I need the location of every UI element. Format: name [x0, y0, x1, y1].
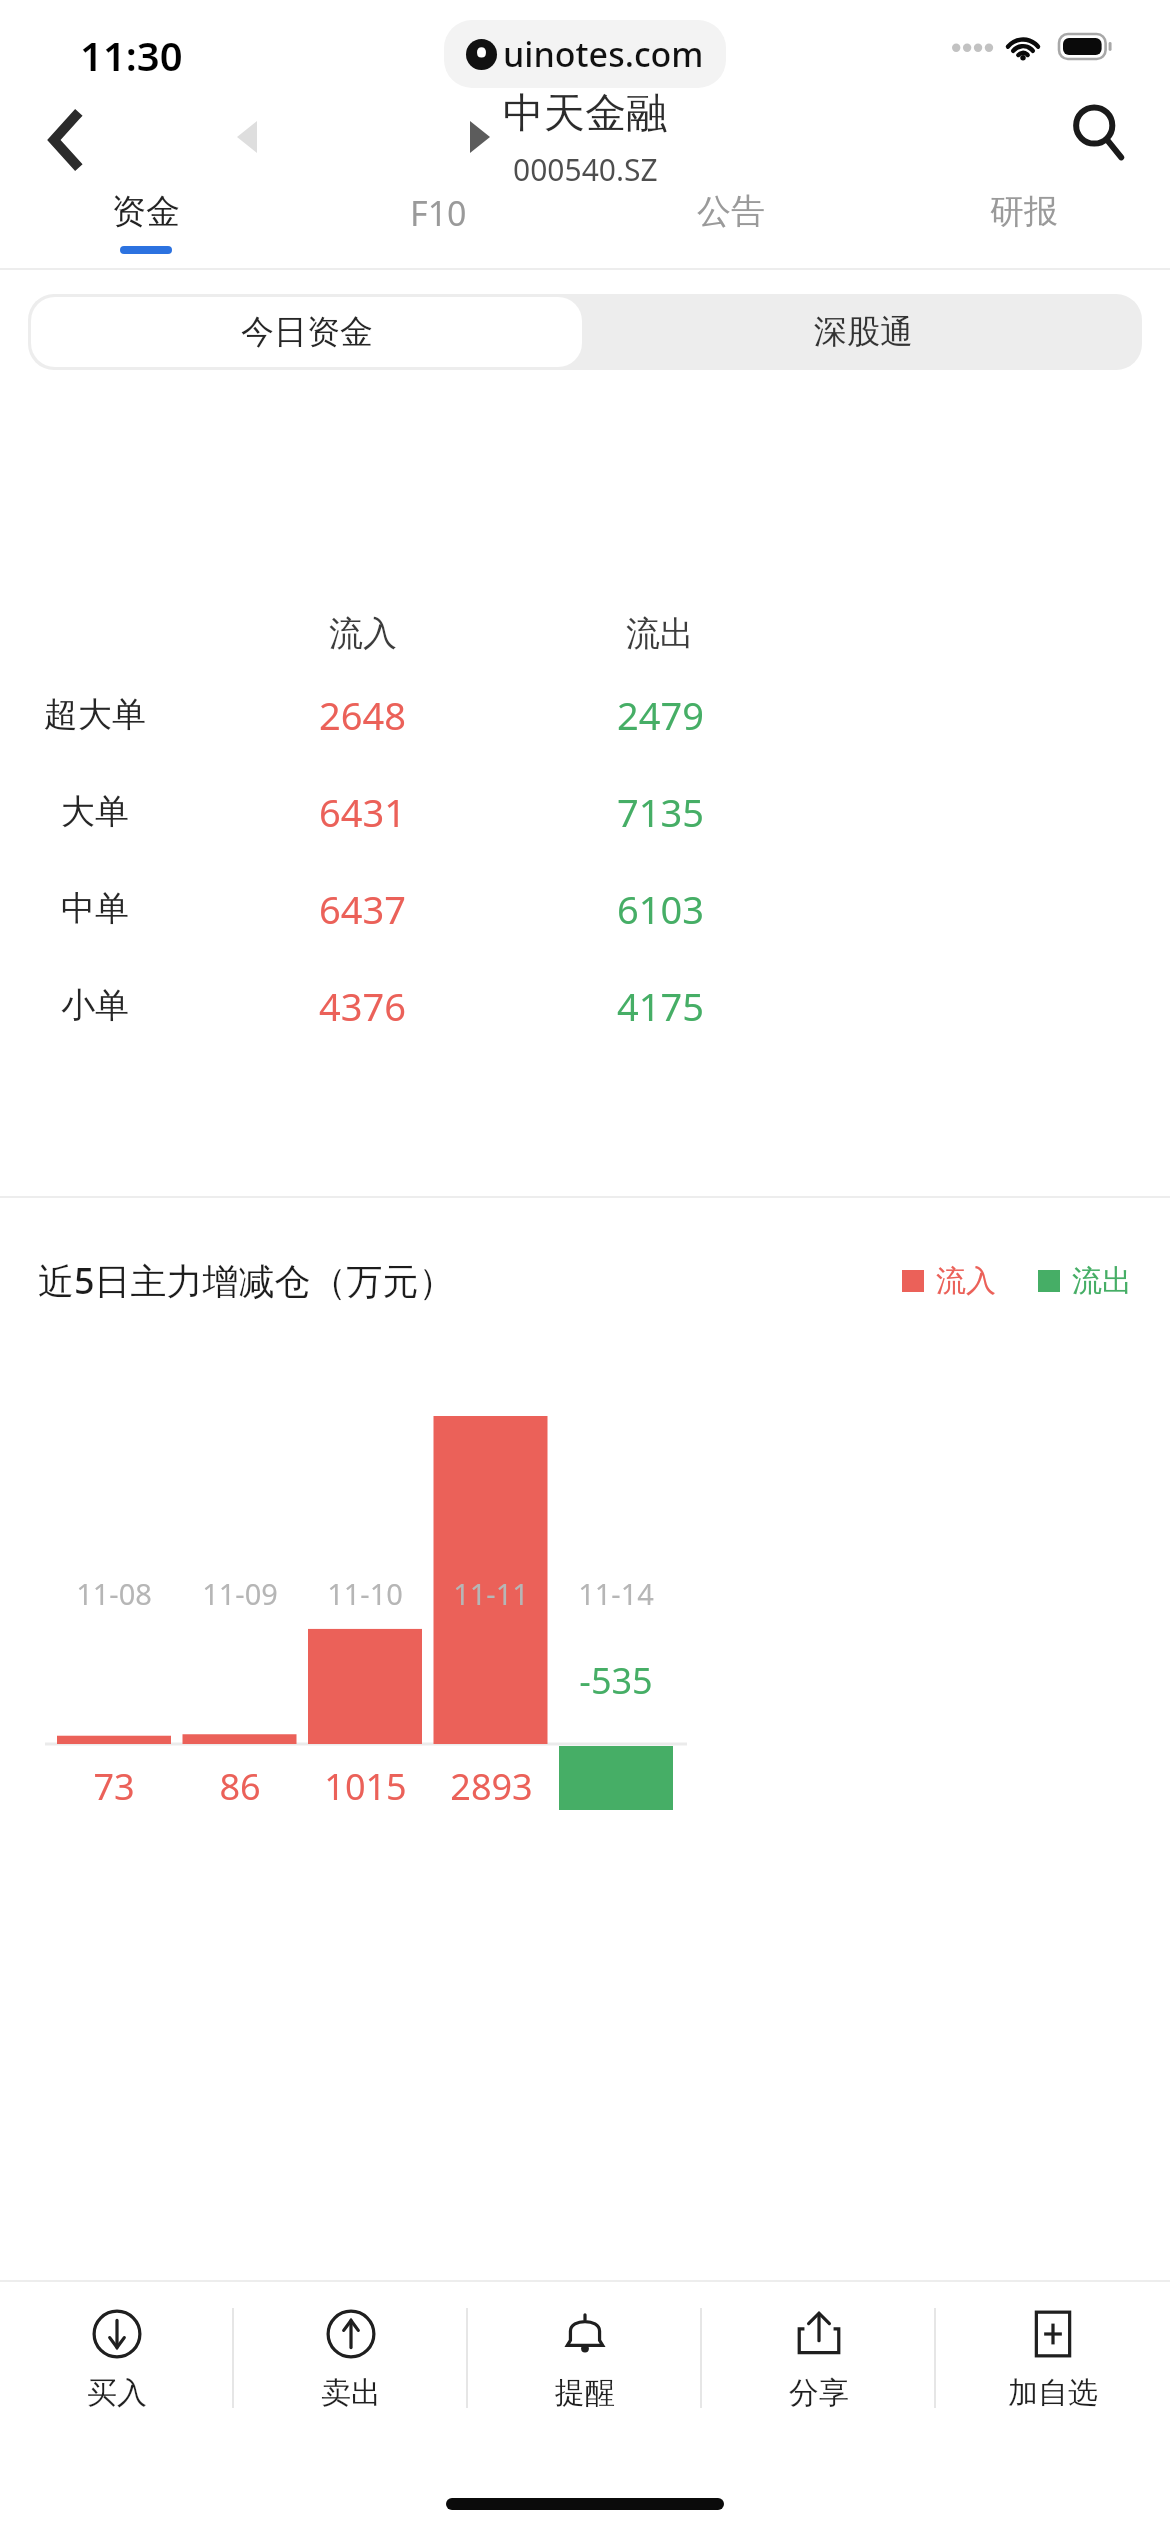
- staticText: 86: [219, 1762, 261, 1811]
- button[interactable]: Previous stock: [202, 92, 292, 182]
- button[interactable]: 公告: [584, 175, 877, 270]
- button[interactable]: F10: [292, 175, 584, 270]
- staticText: 1015: [324, 1762, 407, 1811]
- staticText: 超大单: [44, 693, 146, 736]
- button[interactable]: Back: [10, 85, 120, 195]
- staticText: 加自选: [1008, 2374, 1098, 2412]
- staticText: 小单: [61, 984, 129, 1027]
- staticText: 研报: [990, 190, 1058, 233]
- staticText: 买入: [87, 2374, 147, 2412]
- button[interactable]: 卖出: [234, 2280, 468, 2450]
- staticText: 流出: [626, 612, 694, 655]
- staticText: 中单: [61, 887, 129, 930]
- staticText: 73: [93, 1762, 135, 1811]
- staticText: uinotes.com: [503, 31, 704, 77]
- staticText: 今日资金: [241, 311, 373, 353]
- staticText: 7135: [617, 786, 704, 838]
- staticText: 近5日主力增减仓（万元）: [38, 1256, 455, 1305]
- button[interactable]: 今日资金: [31, 297, 582, 367]
- staticText: 资金: [112, 190, 180, 233]
- staticText: -535: [579, 1656, 653, 1705]
- staticText: 卖出: [321, 2374, 381, 2412]
- button[interactable]: 超大单: [0, 666, 1170, 763]
- staticText: 2893: [450, 1762, 533, 1811]
- button[interactable]: 大单: [0, 763, 1170, 860]
- staticText: 中天金融: [503, 88, 667, 140]
- staticText: 6437: [319, 883, 406, 935]
- staticText: 2648: [319, 689, 406, 741]
- staticText: 11-10: [327, 1574, 403, 1613]
- staticText: 公告: [697, 190, 765, 233]
- button[interactable]: Next stock: [435, 92, 525, 182]
- staticText: 000540.SZ: [513, 149, 658, 190]
- button[interactable]: 中单: [0, 860, 1170, 957]
- staticText: 提醒: [555, 2374, 615, 2412]
- button[interactable]: 买入: [0, 2280, 234, 2450]
- staticText: 6103: [617, 883, 704, 935]
- button[interactable]: 小单: [0, 957, 1170, 1054]
- staticText: 流入: [329, 612, 397, 655]
- staticText: 11:30: [80, 28, 183, 82]
- staticText: 11-14: [578, 1574, 654, 1613]
- staticText: 分享: [789, 2374, 849, 2412]
- staticText: 11-09: [202, 1574, 278, 1613]
- staticText: 6431: [319, 786, 406, 838]
- button[interactable]: 研报: [877, 175, 1170, 270]
- staticText: F10: [410, 190, 467, 236]
- staticText: 深股通: [814, 311, 913, 353]
- button[interactable]: 深股通: [585, 294, 1142, 370]
- staticText: 4175: [617, 980, 704, 1032]
- button[interactable]: 提醒: [468, 2280, 702, 2450]
- staticText: 流出: [1072, 1262, 1132, 1300]
- button[interactable]: 资金: [0, 175, 292, 270]
- button[interactable]: 分享: [702, 2280, 936, 2450]
- staticText: 11-08: [76, 1574, 152, 1613]
- button[interactable]: Search: [1048, 82, 1148, 182]
- staticText: 11-11: [453, 1574, 529, 1613]
- staticText: 2479: [617, 689, 704, 741]
- button[interactable]: 加自选: [936, 2280, 1170, 2450]
- staticText: 4376: [319, 980, 406, 1032]
- staticText: 流入: [936, 1262, 996, 1300]
- staticText: 大单: [61, 790, 129, 833]
